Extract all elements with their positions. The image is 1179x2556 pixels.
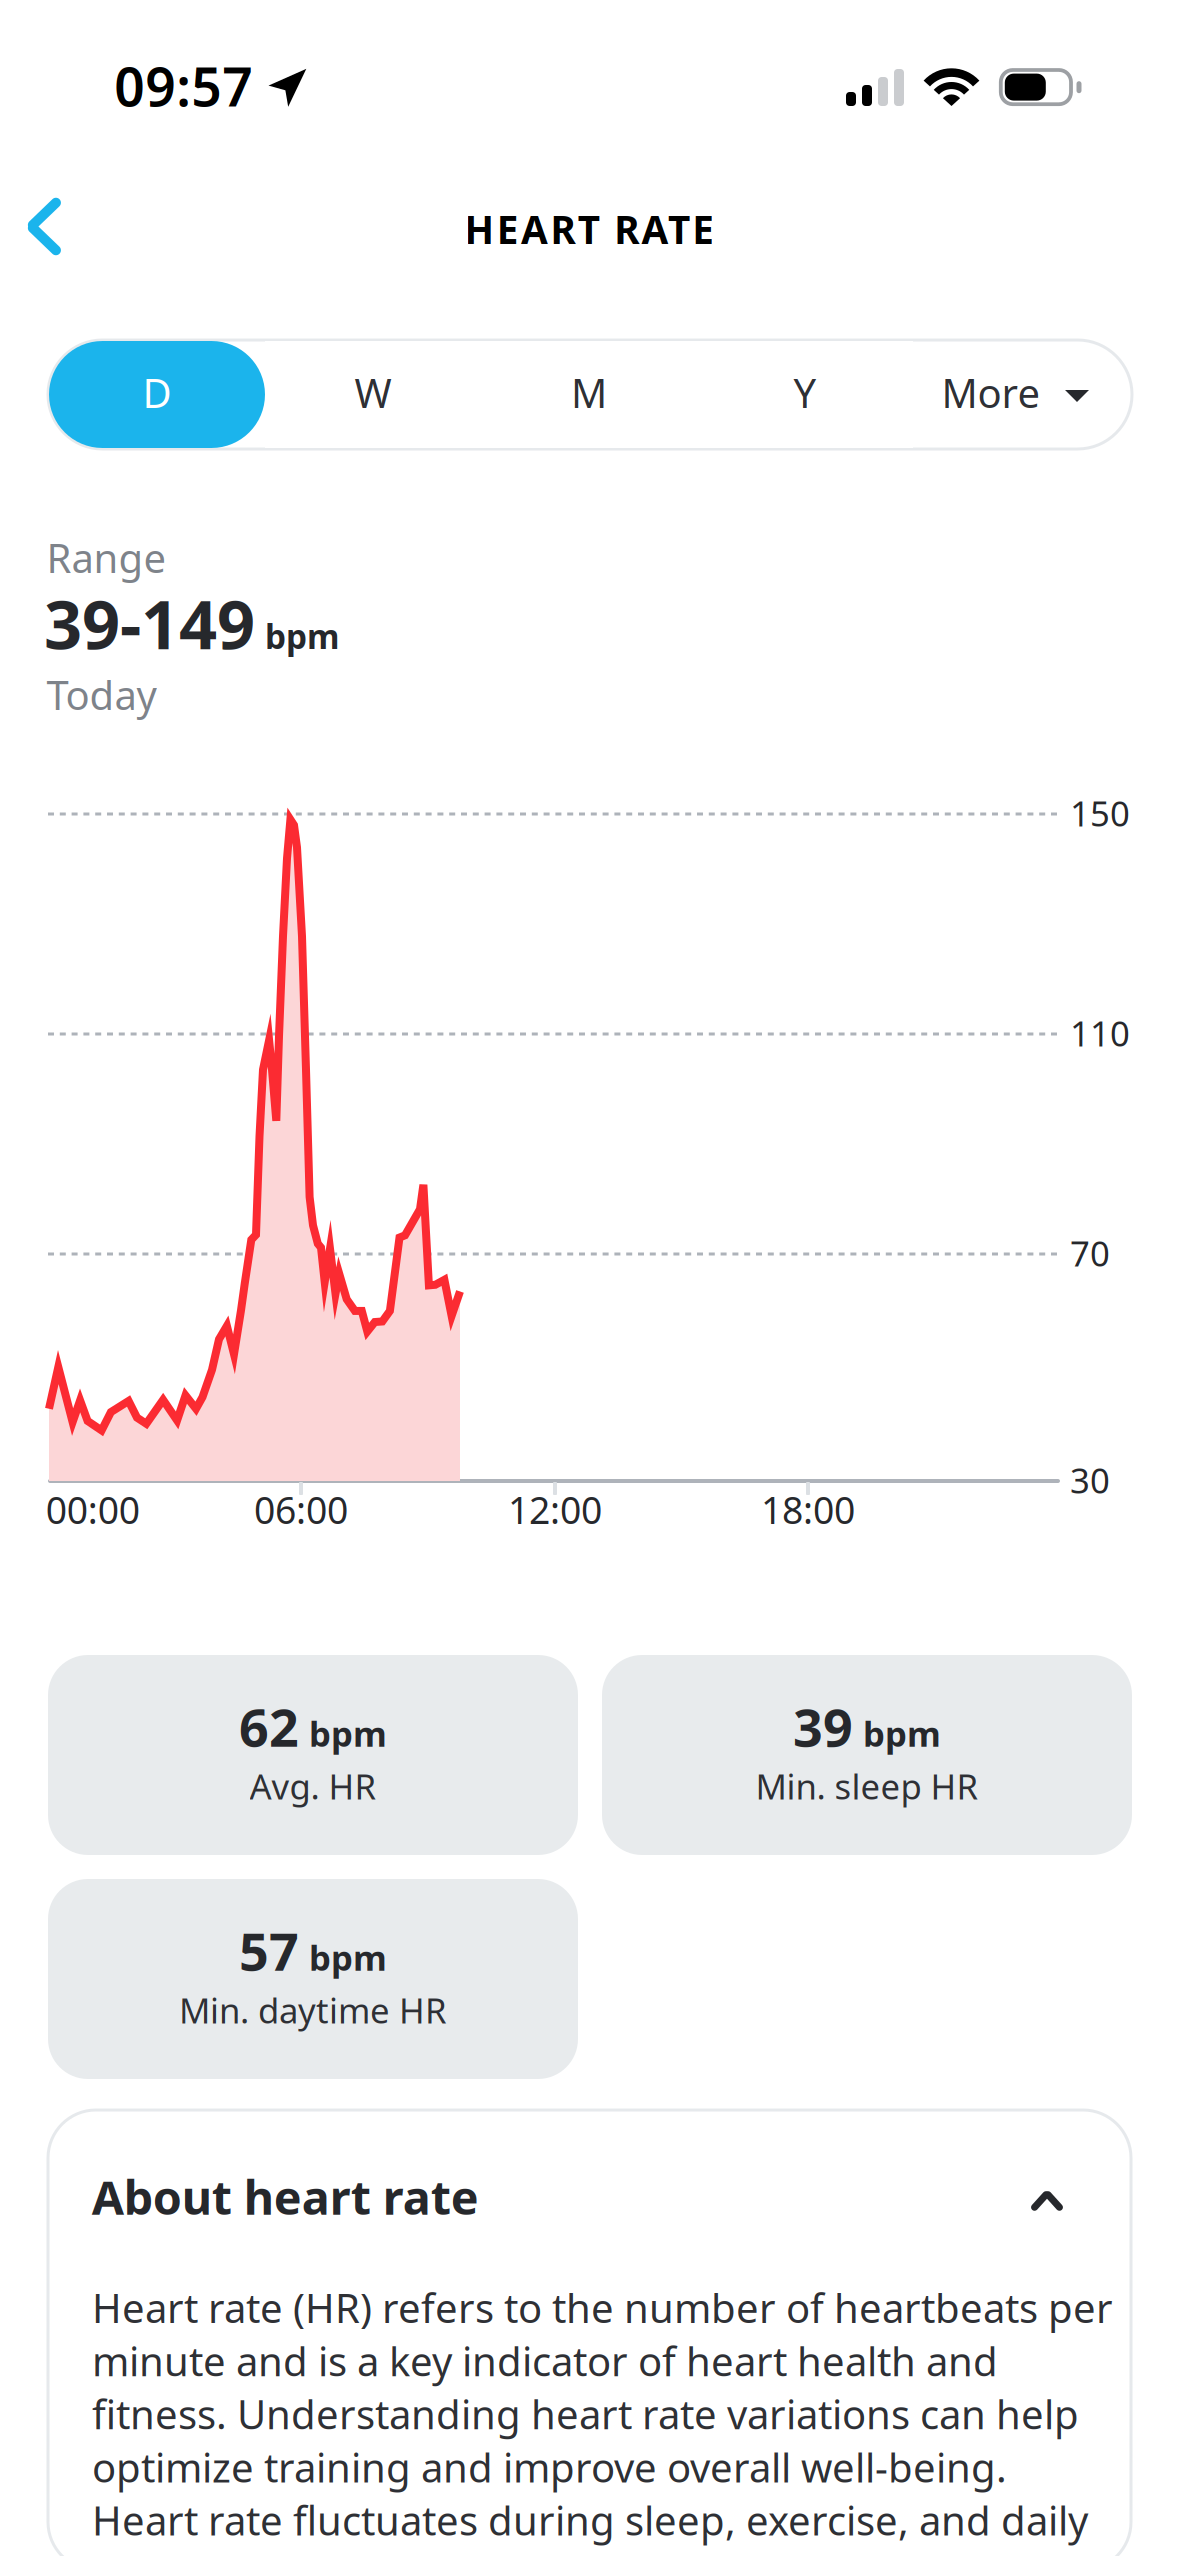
staticText: 12:00 <box>508 1485 602 1534</box>
staticText: Avg. HR <box>249 1763 376 1809</box>
button[interactable]: Back <box>0 166 120 286</box>
staticText: 09:57 <box>114 50 253 121</box>
staticText: D <box>142 366 171 419</box>
staticText: 57 <box>239 1916 299 1985</box>
staticText: 18:00 <box>761 1485 855 1534</box>
staticText: bpm <box>309 1934 387 1980</box>
staticText: 39 <box>793 1692 853 1761</box>
staticText: Y <box>793 366 816 419</box>
button[interactable]: About heart rate <box>48 2140 1131 2264</box>
button[interactable]: 62 <box>48 1655 578 1855</box>
button[interactable]: W <box>265 341 481 448</box>
staticText: 70 <box>1070 1230 1110 1276</box>
button[interactable]: D <box>49 341 265 448</box>
button[interactable]: M <box>481 341 697 448</box>
staticText: 00:00 <box>46 1485 140 1534</box>
staticText: M <box>571 366 607 419</box>
staticText: 06:00 <box>254 1485 348 1534</box>
staticText: bpm <box>265 614 340 658</box>
staticText: bpm <box>309 1710 387 1756</box>
staticText: Min. sleep HR <box>755 1763 978 1809</box>
staticText: HEART RATE <box>464 203 714 254</box>
staticText: Today <box>46 668 156 721</box>
staticText: 150 <box>1070 790 1130 836</box>
staticText: Heart rate (HR) refers to the number of … <box>92 2281 1113 2547</box>
staticText: 62 <box>239 1692 299 1761</box>
staticText: Min. daytime HR <box>179 1987 447 2033</box>
staticText: Range <box>46 531 166 584</box>
staticText: 30 <box>1070 1457 1110 1503</box>
staticText: More <box>941 366 1040 419</box>
button[interactable]: Y <box>697 341 913 448</box>
button[interactable]: 57 <box>48 1879 578 2079</box>
staticText: bpm <box>863 1710 941 1756</box>
staticText: W <box>354 366 391 419</box>
staticText: 39-149 <box>44 579 255 667</box>
staticText: About heart rate <box>92 2166 479 2228</box>
button[interactable]: 39 <box>602 1655 1132 1855</box>
button[interactable]: More <box>913 341 1131 448</box>
staticText: 110 <box>1070 1010 1130 1056</box>
